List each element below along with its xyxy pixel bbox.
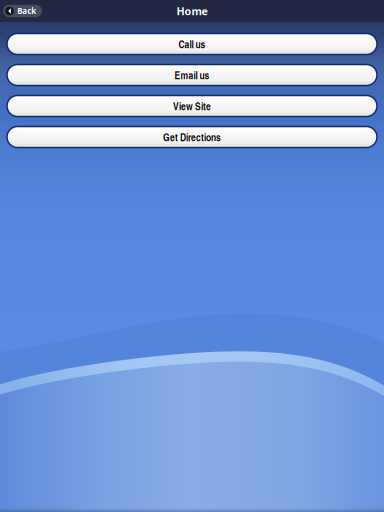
staticText: Call us — [178, 37, 205, 51]
staticText: Home — [176, 4, 207, 18]
button[interactable]: Call us — [7, 33, 377, 54]
staticText: View Site — [173, 99, 211, 113]
button[interactable]: Get Directions — [7, 126, 377, 147]
button[interactable]: View Site — [7, 95, 377, 116]
staticText: Back — [17, 6, 36, 16]
button[interactable]: Back — [3, 5, 42, 17]
button[interactable]: Email us — [7, 64, 377, 85]
staticText: Email us — [174, 68, 209, 82]
staticText: Get Directions — [163, 130, 221, 144]
